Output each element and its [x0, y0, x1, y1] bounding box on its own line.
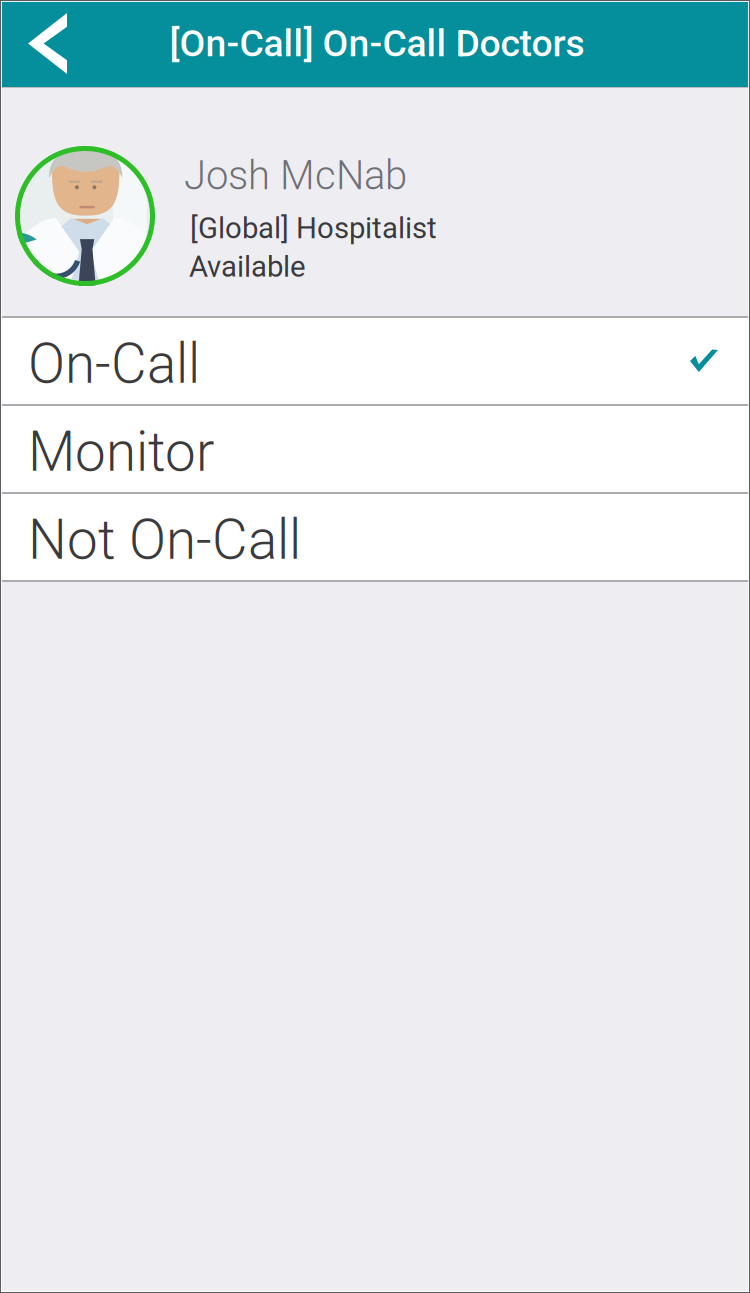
staticText: Not On-Call [28, 508, 301, 572]
staticText: [Global] Hospitalist [190, 211, 437, 245]
staticText: Josh McNab [184, 152, 407, 199]
staticText: Monitor [28, 420, 214, 484]
button[interactable]: Not On-Call [0, 494, 750, 580]
button[interactable]: Monitor [0, 406, 750, 492]
button[interactable]: Back [0, 0, 103, 87]
button[interactable]: On-Call [0, 318, 750, 404]
staticText: On-Call [28, 332, 200, 396]
staticText: Available [189, 249, 306, 284]
staticText: [On-Call] On-Call Doctors [169, 22, 584, 65]
